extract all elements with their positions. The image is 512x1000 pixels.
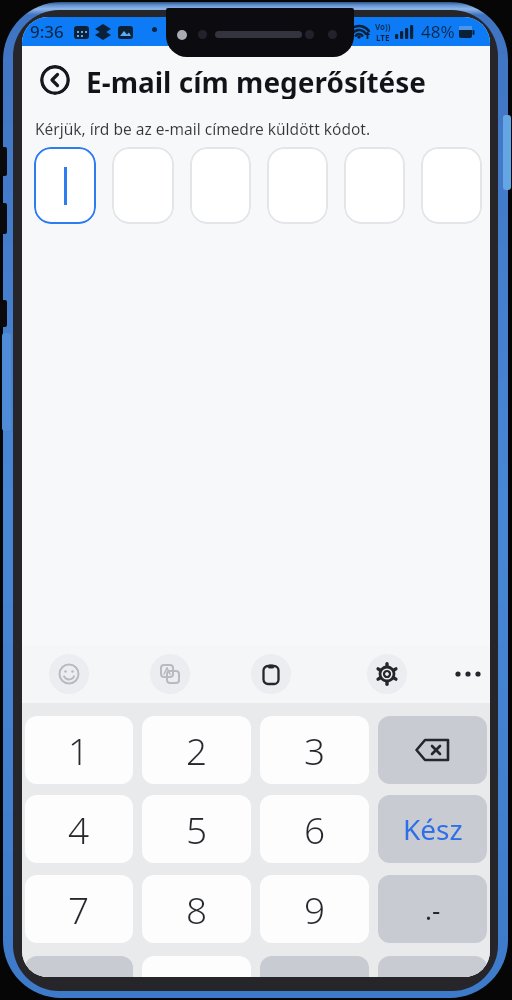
staticText: 4 bbox=[68, 804, 90, 854]
staticText: 9 bbox=[304, 884, 326, 934]
button[interactable] bbox=[251, 654, 291, 694]
button[interactable] bbox=[378, 716, 487, 784]
button[interactable]: 4 bbox=[25, 795, 133, 863]
button[interactable]: 9 bbox=[260, 875, 369, 943]
button[interactable] bbox=[448, 654, 488, 694]
staticText: 2 bbox=[186, 725, 208, 775]
button[interactable]: 6 bbox=[260, 795, 369, 863]
staticText: 3 bbox=[304, 725, 326, 775]
button[interactable] bbox=[34, 147, 96, 224]
button[interactable] bbox=[49, 654, 89, 694]
staticText: 6 bbox=[304, 804, 326, 854]
staticText: Kérjük, írd be az e-mail címedre küldött… bbox=[35, 118, 371, 139]
staticText: 48% bbox=[421, 20, 455, 43]
button[interactable] bbox=[367, 654, 407, 694]
button[interactable]: 5 bbox=[142, 795, 251, 863]
button[interactable] bbox=[344, 147, 405, 224]
button[interactable] bbox=[40, 65, 70, 95]
button[interactable] bbox=[260, 956, 369, 977]
button[interactable] bbox=[25, 956, 133, 977]
button[interactable] bbox=[267, 147, 328, 224]
button[interactable]: 7 bbox=[25, 875, 133, 943]
button[interactable] bbox=[378, 956, 487, 977]
staticText: Kész bbox=[403, 810, 463, 848]
button[interactable] bbox=[112, 147, 174, 224]
staticText: 1 bbox=[68, 725, 90, 775]
button[interactable] bbox=[142, 956, 251, 977]
button[interactable]: .- bbox=[378, 875, 487, 943]
staticText: 5 bbox=[186, 804, 208, 854]
button[interactable] bbox=[150, 654, 190, 694]
button[interactable]: 8 bbox=[142, 875, 251, 943]
button[interactable] bbox=[190, 147, 251, 224]
button[interactable]: 2 bbox=[142, 716, 251, 784]
staticText: 7 bbox=[68, 884, 90, 934]
staticText: Vo)) bbox=[375, 21, 391, 32]
button[interactable] bbox=[421, 147, 482, 224]
staticText: .- bbox=[425, 892, 441, 927]
button[interactable]: 1 bbox=[25, 716, 133, 784]
button[interactable]: 3 bbox=[260, 716, 369, 784]
button[interactable]: Kész bbox=[378, 795, 487, 863]
staticText: E-mail cím megerősítése bbox=[86, 63, 427, 99]
staticText: 8 bbox=[186, 884, 208, 934]
staticText: 9:36 bbox=[30, 20, 64, 43]
staticText: LTE bbox=[376, 32, 390, 43]
